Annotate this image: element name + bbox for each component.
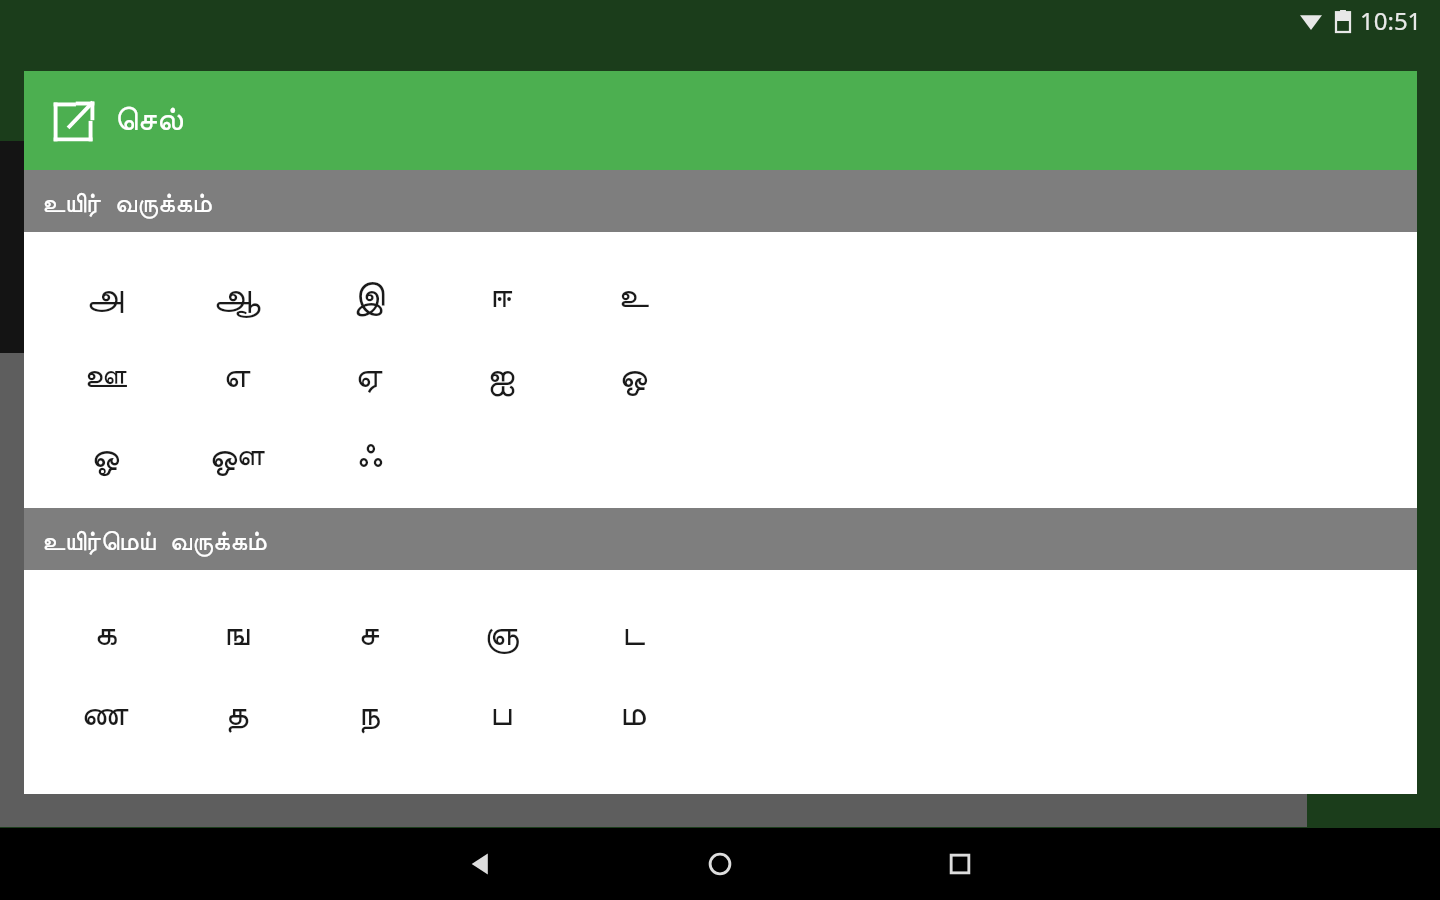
staticText: ங xyxy=(224,616,250,652)
button[interactable]: ஒ xyxy=(591,342,675,410)
button[interactable]: உயிர்மெய் வருக்கம் xyxy=(24,508,1417,570)
staticText: ஔ xyxy=(209,438,265,474)
button[interactable]: ண xyxy=(63,680,147,748)
button[interactable]: Open in new xyxy=(24,71,1417,170)
button[interactable]: ம xyxy=(591,680,675,748)
button[interactable]: Recent apps xyxy=(910,828,1010,900)
staticText: ண xyxy=(81,696,129,732)
button[interactable]: உயிர் வருக்கம் xyxy=(24,170,1417,232)
button[interactable]: ஓ xyxy=(63,422,147,490)
staticText: ஐ xyxy=(487,358,515,394)
staticText: உ xyxy=(618,278,649,314)
button[interactable]: ங xyxy=(195,600,279,668)
staticText: உயிர்மெய் வருக்கம் xyxy=(42,521,267,558)
staticText: எ xyxy=(223,358,251,394)
staticText: இ xyxy=(353,278,385,314)
staticText: ஞ xyxy=(484,616,519,652)
button[interactable]: ஈ xyxy=(459,262,543,330)
staticText: ஏ xyxy=(355,358,383,394)
button[interactable]: Home xyxy=(670,828,770,900)
button[interactable]: ட xyxy=(591,600,675,668)
staticText: ஈ xyxy=(490,278,513,314)
button[interactable]: ச xyxy=(327,600,411,668)
button[interactable]: ஐ xyxy=(459,342,543,410)
button[interactable]: எ xyxy=(195,342,279,410)
button[interactable]: ஆ xyxy=(195,262,279,330)
staticText: 10:51 xyxy=(1360,4,1422,37)
staticText: உயிர் வருக்கம் xyxy=(42,183,212,220)
button[interactable]: க xyxy=(63,600,147,668)
staticText: ச xyxy=(358,616,380,652)
button[interactable]: ஞ xyxy=(459,600,543,668)
button[interactable]: ஔ xyxy=(195,422,279,490)
staticText: ஆ xyxy=(213,278,261,314)
other: Open in new xyxy=(51,98,97,144)
staticText: ஊ xyxy=(84,358,127,394)
staticText: ஓ xyxy=(91,438,120,474)
staticText: த xyxy=(225,696,249,732)
button[interactable]: ப xyxy=(459,680,543,748)
button[interactable]: உ xyxy=(591,262,675,330)
button[interactable]: அ xyxy=(63,262,147,330)
button[interactable]: ஏ xyxy=(327,342,411,410)
staticText: ந xyxy=(358,696,380,732)
staticText: ஃ xyxy=(356,438,383,474)
staticText: ட xyxy=(622,616,645,652)
button[interactable]: ஃ xyxy=(327,422,411,490)
staticText: அ xyxy=(86,278,124,314)
staticText: செல் xyxy=(115,104,184,137)
staticText: ப xyxy=(490,696,512,732)
staticText: ம xyxy=(620,696,646,732)
button[interactable]: ஊ xyxy=(63,342,147,410)
button[interactable]: இ xyxy=(327,262,411,330)
button[interactable]: ந xyxy=(327,680,411,748)
staticText: க xyxy=(94,616,117,652)
button[interactable]: Back xyxy=(430,828,530,900)
button[interactable]: த xyxy=(195,680,279,748)
staticText: ஒ xyxy=(619,358,648,394)
